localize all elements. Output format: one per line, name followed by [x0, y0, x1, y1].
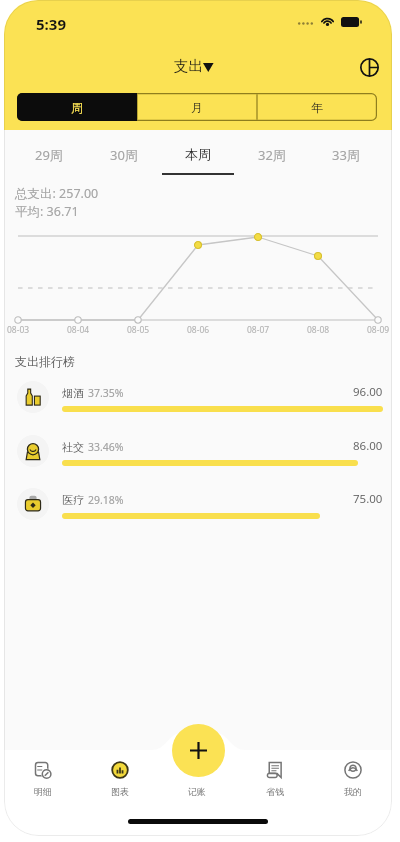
button[interactable]: 周 — [17, 93, 137, 121]
staticText: 08-03 — [7, 324, 30, 336]
staticText: 08-04 — [67, 324, 90, 336]
staticText: 支出 — [174, 57, 203, 75]
staticText: 33周 — [332, 146, 360, 164]
staticText: 32周 — [258, 146, 286, 164]
staticText: 37.35% — [88, 386, 124, 400]
staticText: 省钱 — [266, 786, 284, 797]
staticText: 月 — [191, 100, 203, 115]
staticText: 29.18% — [88, 493, 124, 507]
button[interactable]: 我的 — [314, 749, 392, 836]
staticText: 总支出: 257.00 — [15, 185, 99, 202]
staticText: 年 — [311, 100, 323, 115]
staticText: 30周 — [110, 146, 138, 164]
staticText: 支出排行榜 — [15, 354, 75, 369]
button[interactable]: 社交 — [4, 430, 392, 480]
staticText: 08-07 — [247, 324, 270, 336]
staticText: 08-08 — [307, 324, 330, 336]
button[interactable]: 省钱 — [236, 749, 314, 836]
staticText: 5:39 — [36, 14, 66, 34]
button[interactable]: 年 — [257, 93, 377, 121]
button[interactable]: 图表 — [81, 749, 158, 836]
button[interactable]: 烟酒 — [4, 376, 392, 426]
button[interactable]: 32周 — [235, 130, 309, 178]
staticText: 医疗 — [62, 493, 84, 507]
staticText: 75.00 — [353, 491, 383, 507]
staticText: 烟酒 — [62, 386, 84, 400]
staticText: 我的 — [344, 786, 362, 797]
button[interactable]: Add record — [172, 724, 225, 777]
button[interactable]: 29周 — [11, 130, 86, 178]
button[interactable]: 记账 — [158, 749, 236, 836]
staticText: 29周 — [35, 146, 63, 164]
staticText: 08-05 — [127, 324, 150, 336]
staticText: 周 — [71, 100, 83, 115]
button[interactable]: 本周 — [161, 130, 235, 178]
staticText: 本周 — [185, 146, 211, 162]
button[interactable]: 支出 — [174, 57, 215, 75]
button[interactable]: 明细 — [4, 749, 81, 836]
staticText: 社交 — [62, 440, 84, 454]
staticText: 33.46% — [88, 440, 124, 454]
staticText: 平均: 36.71 — [15, 203, 79, 220]
button[interactable]: 33周 — [309, 130, 383, 178]
staticText: 96.00 — [353, 384, 383, 400]
staticText: 图表 — [111, 786, 129, 797]
button[interactable]: 30周 — [86, 130, 161, 178]
staticText: 08-09 — [367, 324, 390, 336]
button[interactable]: Switch chart type — [352, 50, 386, 84]
staticText: 明细 — [34, 786, 52, 797]
staticText: 记账 — [188, 786, 206, 797]
staticText: 08-06 — [187, 324, 210, 336]
button[interactable]: 月 — [137, 93, 257, 121]
button[interactable]: 医疗 — [4, 483, 392, 533]
staticText: 86.00 — [353, 438, 383, 454]
